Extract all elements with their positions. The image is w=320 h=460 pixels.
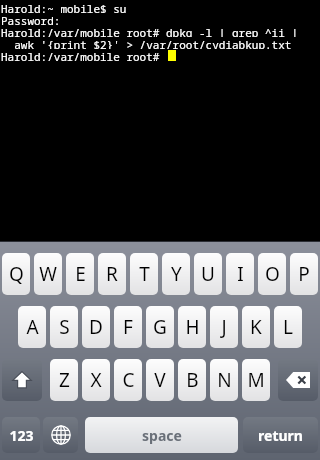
button[interactable]: 123 xyxy=(2,417,40,453)
staticText: A xyxy=(26,314,39,340)
staticText: Harold:~ mobile$ su xyxy=(1,1,127,13)
button[interactable]: P xyxy=(290,253,318,295)
staticText: Harold:/var/mobile root# xyxy=(1,49,160,61)
button[interactable]: G xyxy=(146,306,174,348)
staticText: X xyxy=(90,367,102,393)
button[interactable]: Switch keyboard xyxy=(43,417,78,453)
staticText: 123 xyxy=(9,426,34,445)
staticText: return xyxy=(258,426,303,445)
button[interactable]: N xyxy=(210,359,238,401)
staticText: B xyxy=(186,367,199,393)
button[interactable]: V xyxy=(146,359,174,401)
button[interactable]: Z xyxy=(50,359,78,401)
button[interactable]: H xyxy=(178,306,206,348)
staticText: E xyxy=(75,261,86,287)
button[interactable]: space xyxy=(85,417,238,453)
button[interactable]: F xyxy=(114,306,142,348)
button[interactable]: C xyxy=(114,359,142,401)
staticText: Password: xyxy=(1,13,61,25)
button[interactable]: J xyxy=(210,306,238,348)
button[interactable]: X xyxy=(82,359,110,401)
staticText: R xyxy=(106,261,118,287)
button[interactable]: return xyxy=(243,417,318,453)
button[interactable]: Y xyxy=(162,253,190,295)
staticText: C xyxy=(122,367,135,393)
staticText: space xyxy=(142,426,182,445)
staticText: Q xyxy=(9,261,24,287)
staticText: W xyxy=(39,261,57,287)
button[interactable]: B xyxy=(178,359,206,401)
staticText: V xyxy=(154,367,166,393)
button[interactable]: Shift xyxy=(2,359,42,401)
staticText: G xyxy=(153,314,167,340)
button[interactable]: Q xyxy=(2,253,30,295)
button[interactable]: L xyxy=(274,306,302,348)
staticText: Y xyxy=(171,261,182,287)
button[interactable]: M xyxy=(242,359,270,401)
button[interactable]: R xyxy=(98,253,126,295)
button[interactable]: W xyxy=(34,253,62,295)
button[interactable]: Backspace xyxy=(278,359,318,401)
staticText: M xyxy=(247,367,265,393)
staticText: U xyxy=(201,261,215,287)
staticText: J xyxy=(221,314,227,340)
button[interactable]: I xyxy=(226,253,254,295)
staticText: D xyxy=(89,314,103,340)
staticText: K xyxy=(250,314,262,340)
staticText: Harold:/var/mobile root# dpkg -l | grep … xyxy=(1,25,298,37)
staticText: O xyxy=(265,261,280,287)
button[interactable]: K xyxy=(242,306,270,348)
staticText: L xyxy=(283,314,293,340)
button[interactable]: U xyxy=(194,253,222,295)
button[interactable]: S xyxy=(50,306,78,348)
staticText: N xyxy=(217,367,232,393)
staticText: Z xyxy=(59,367,70,393)
staticText: H xyxy=(185,314,200,340)
button[interactable]: D xyxy=(82,306,110,348)
button[interactable]: O xyxy=(258,253,286,295)
staticText: T xyxy=(139,261,150,287)
button[interactable]: T xyxy=(130,253,158,295)
button[interactable]: A xyxy=(18,306,46,348)
staticText: awk '{print $2}' > /var/root/cydiabkup.t… xyxy=(1,37,292,49)
staticText: I xyxy=(237,261,244,287)
staticText: S xyxy=(59,314,70,340)
staticText: F xyxy=(123,314,133,340)
staticText: P xyxy=(298,261,310,287)
button[interactable]: E xyxy=(66,253,94,295)
